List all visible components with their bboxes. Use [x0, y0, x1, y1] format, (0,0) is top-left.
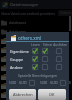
button[interactable]: Eigentümer ausführen: [56, 48, 62, 54]
button[interactable]: Andere: [6, 63, 69, 71]
staticText: others.xml: [8, 83, 27, 88]
button[interactable]: others.xml: [0, 63, 72, 72]
staticText: Suchen: [60, 11, 71, 15]
staticText: Lesen: [30, 43, 41, 47]
button[interactable]: others.xml: [0, 45, 72, 54]
staticText: GUID: [19, 81, 27, 85]
button[interactable]: OK: [38, 89, 66, 100]
staticText: others.xml: [8, 74, 27, 79]
staticText: Eigentümer: [10, 49, 30, 54]
button[interactable]: others.xml: [0, 99, 72, 100]
button[interactable]: others.xml: [0, 72, 72, 81]
staticText: others.xml: [8, 38, 27, 43]
staticText: Spezielle Berechtigungen: [6, 73, 69, 77]
staticText: others.xml: [8, 92, 27, 97]
button[interactable]: Abbrechen: [9, 89, 36, 100]
button[interactable]: Eigentümer lesen: [32, 48, 38, 54]
staticText: others.xml: [18, 35, 42, 41]
staticText: others.xml: [8, 65, 27, 70]
button[interactable]: Eigentümer schreiben: [42, 48, 48, 54]
staticText: others.xml: [8, 56, 27, 61]
button[interactable]: Andere schreiben: [42, 64, 48, 70]
staticText: Abbrechen: [13, 92, 33, 97]
staticText: /data/data/com.android.providers: [1, 11, 56, 16]
staticText: SUID: [40, 81, 48, 85]
staticText: others.xml: [8, 47, 27, 52]
staticText: databases: [9, 20, 27, 25]
button[interactable]: Andere lesen: [32, 64, 38, 70]
staticText: databases: [9, 29, 27, 34]
button[interactable]: others.xml: [0, 54, 72, 63]
button[interactable]: others.xml: [0, 81, 72, 90]
button[interactable]: databases: [0, 18, 72, 27]
button[interactable]: databases: [0, 27, 72, 36]
staticText: SUID: [9, 81, 17, 85]
button[interactable]: Suchen: [58, 10, 72, 16]
button[interactable]: others.xml: [0, 36, 72, 45]
button[interactable]: Gruppe lesen: [32, 56, 38, 62]
button[interactable]: Set GID: [60, 80, 66, 86]
button[interactable]: Gruppe: [6, 55, 69, 63]
button[interactable]: Set UID: [29, 80, 35, 86]
button[interactable]: Gruppe schreiben: [42, 56, 48, 62]
button[interactable]: Andere ausführen: [56, 64, 62, 70]
staticText: Dateimanager: [10, 2, 39, 8]
staticText: Andere: [10, 65, 30, 70]
staticText: GUID: [50, 81, 58, 85]
staticText: Ausführen: [53, 43, 67, 47]
button[interactable]: Eigentümer: [6, 47, 69, 55]
staticText: OK: [49, 92, 55, 97]
staticText: Schreiben: [42, 43, 53, 47]
button[interactable]: Gruppe ausführen: [56, 56, 62, 62]
staticText: Gruppe: [10, 57, 30, 62]
button[interactable]: others.xml: [0, 90, 72, 99]
